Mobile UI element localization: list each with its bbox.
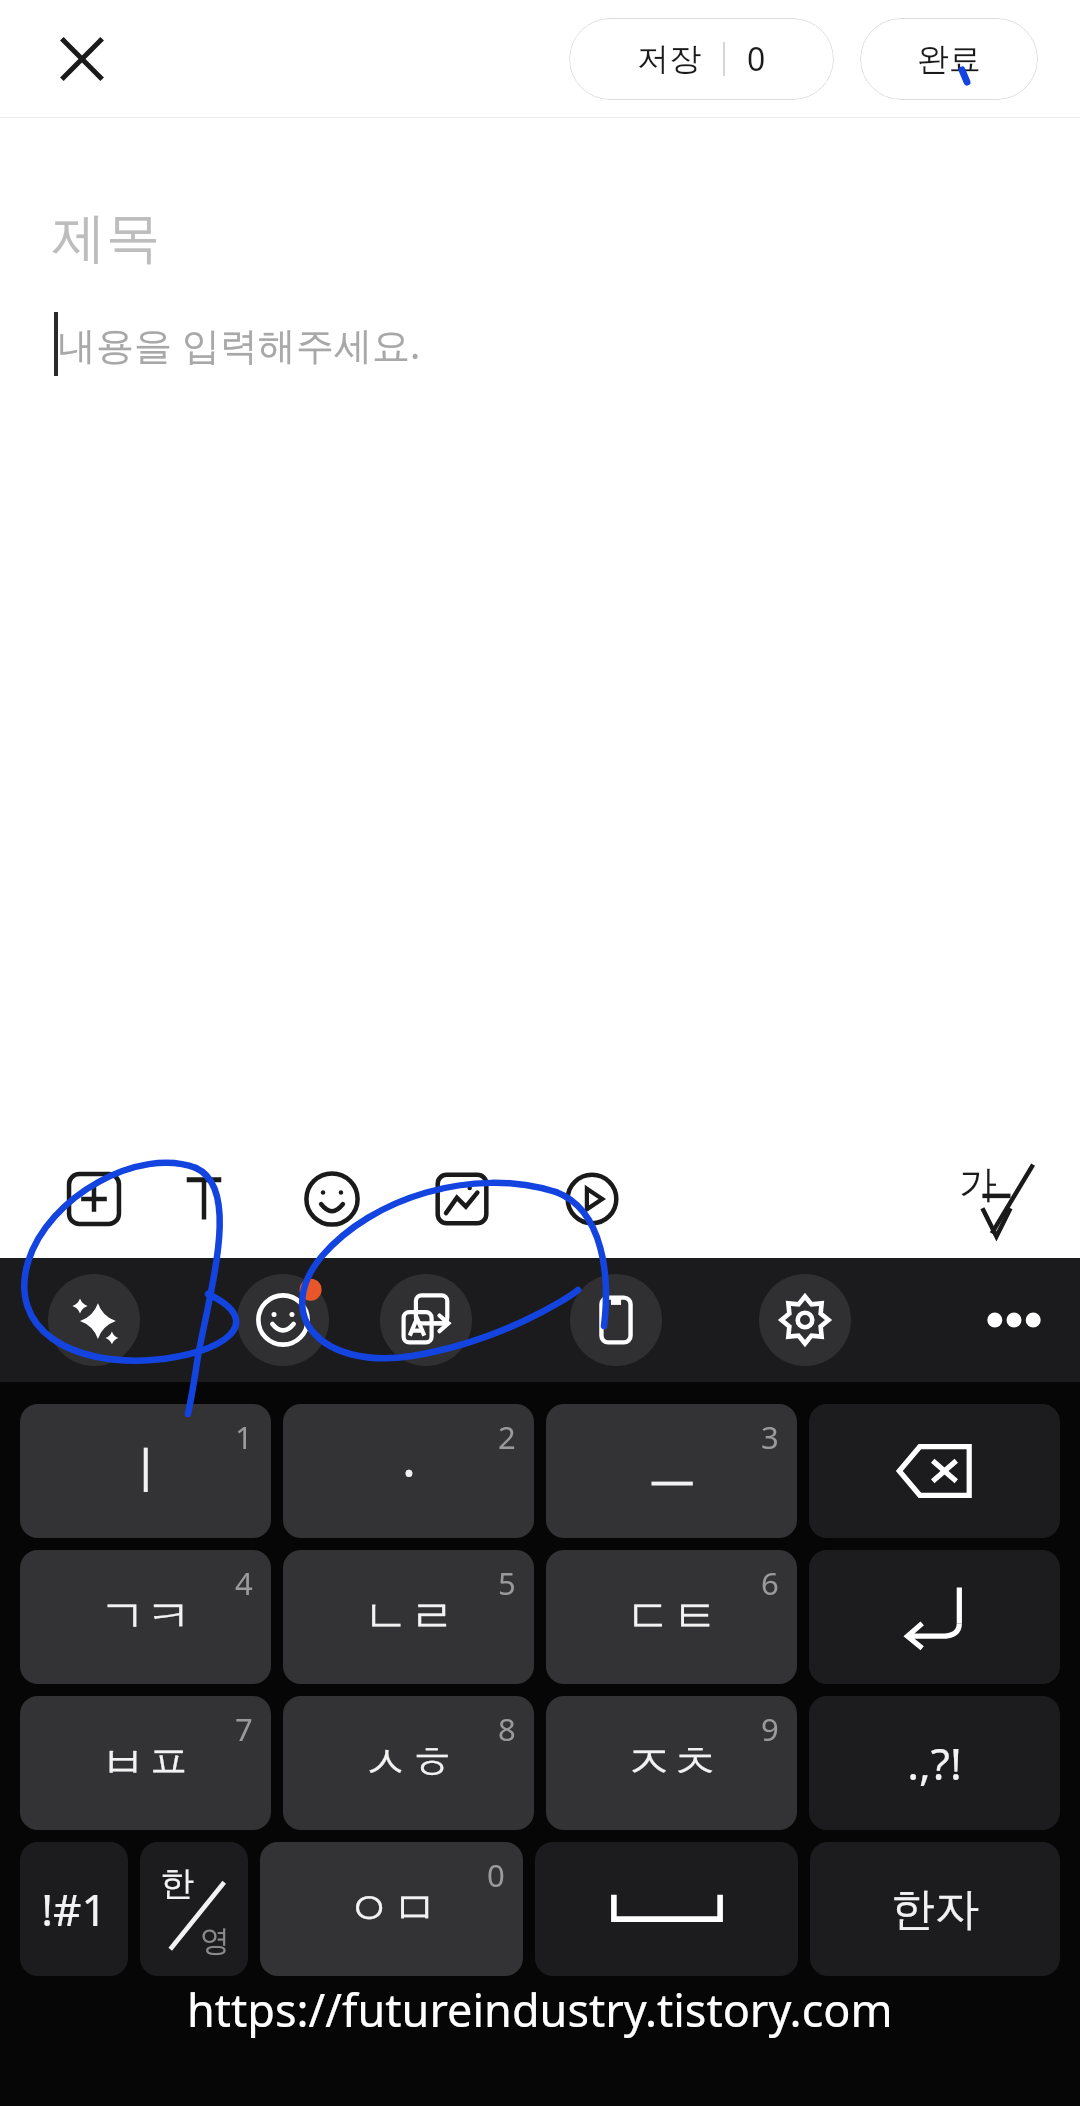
button[interactable]: More options xyxy=(968,1274,1060,1366)
button[interactable]: 0 xyxy=(260,1842,523,1976)
staticText: 2 xyxy=(498,1416,516,1458)
staticText: ㅈㅊ xyxy=(626,1734,718,1792)
staticText: 6 xyxy=(761,1562,779,1604)
button[interactable]: .,?! xyxy=(809,1696,1060,1830)
button[interactable]: AI writing assist xyxy=(48,1274,140,1366)
staticText: ㄷㅌ xyxy=(626,1588,718,1646)
staticText: 4 xyxy=(235,1562,253,1604)
staticText: · xyxy=(402,1436,416,1507)
button[interactable]: 2 xyxy=(283,1404,534,1538)
button[interactable]: Insert video xyxy=(548,1155,636,1243)
button[interactable]: Close xyxy=(34,11,130,107)
button[interactable]: 한자 xyxy=(810,1842,1060,1976)
button[interactable]: 1 xyxy=(20,1404,271,1538)
button[interactable]: 6 xyxy=(546,1550,797,1684)
button[interactable]: Keyboard settings xyxy=(759,1274,851,1366)
staticText: 한 xyxy=(160,1862,194,1905)
button[interactable]: Text style xyxy=(160,1155,248,1243)
button[interactable]: Clipboard xyxy=(570,1274,662,1366)
button[interactable]: Korean English toggle xyxy=(140,1842,248,1976)
staticText: 0 xyxy=(487,1854,505,1896)
button[interactable]: Space xyxy=(535,1842,798,1976)
staticText: ㄴㄹ xyxy=(363,1588,455,1646)
staticText: 1 xyxy=(235,1416,253,1458)
staticText: 0 xyxy=(747,37,766,81)
staticText: ㅂㅍ xyxy=(100,1734,192,1792)
staticText: 7 xyxy=(235,1708,253,1750)
button[interactable]: Add attachment xyxy=(50,1155,138,1243)
button[interactable]: 완료 xyxy=(860,18,1038,100)
button[interactable]: 8 xyxy=(283,1696,534,1830)
staticText: 한자 xyxy=(891,1882,979,1937)
button[interactable]: 7 xyxy=(20,1696,271,1830)
button[interactable]: 9 xyxy=(546,1696,797,1830)
staticText: 3 xyxy=(761,1416,779,1458)
button[interactable]: Insert image xyxy=(418,1155,506,1243)
staticText: ㅅㅎ xyxy=(363,1734,455,1792)
staticText: ㄱㅋ xyxy=(100,1588,192,1646)
staticText: ㅣ xyxy=(120,1438,172,1504)
staticText: 완료 xyxy=(917,39,981,79)
button[interactable]: Enter xyxy=(809,1550,1060,1684)
button[interactable]: Backspace xyxy=(809,1404,1060,1538)
staticText: 8 xyxy=(498,1708,516,1750)
staticText: 가 xyxy=(959,1160,997,1208)
button[interactable]: Hide keyboard xyxy=(950,1151,1046,1247)
staticText: ㅇㅁ xyxy=(346,1880,438,1938)
staticText: .,?! xyxy=(907,1733,962,1793)
button[interactable]: 4 xyxy=(20,1550,271,1684)
button[interactable]: 3 xyxy=(546,1404,797,1538)
staticText: 내용을 입력해주세요. xyxy=(58,318,421,370)
staticText: 9 xyxy=(761,1708,779,1750)
staticText: 영 xyxy=(200,1922,230,1960)
button[interactable]: Emoji xyxy=(237,1274,329,1366)
button[interactable]: Translate xyxy=(380,1274,472,1366)
staticText: 제목 xyxy=(52,204,160,272)
button[interactable]: !#1 xyxy=(20,1842,128,1976)
button[interactable]: 저장 xyxy=(569,18,834,100)
staticText: 저장 xyxy=(637,39,701,79)
staticText: https://futureindustry.tistory.com xyxy=(187,1979,893,2040)
staticText: !#1 xyxy=(41,1879,107,1939)
staticText: ㅡ xyxy=(646,1438,698,1504)
staticText: 5 xyxy=(498,1562,516,1604)
button[interactable]: 5 xyxy=(283,1550,534,1684)
button[interactable]: Sticker xyxy=(288,1155,376,1243)
